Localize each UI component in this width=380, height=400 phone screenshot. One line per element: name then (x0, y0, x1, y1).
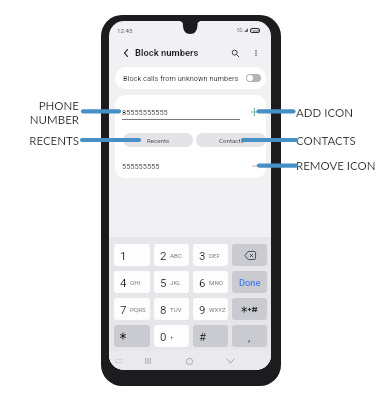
staticText: JKL (170, 279, 181, 286)
staticText: 555555555 (122, 162, 160, 171)
staticText: 6 (199, 276, 206, 289)
button[interactable]: Done (232, 271, 267, 293)
staticText: Block calls from unknown numbers (123, 74, 239, 83)
staticText: CONTACTS (296, 134, 356, 148)
staticText: 3 (199, 249, 206, 262)
staticText: 85555555555 (122, 108, 168, 117)
staticText: PHONE NUMBER (0, 99, 79, 126)
staticText: WXYZ (209, 306, 226, 313)
button[interactable]: 555555555 (115, 154, 266, 178)
staticText: 9 (199, 303, 206, 316)
button[interactable]: 2 (154, 244, 189, 266)
staticText: 5G (237, 28, 243, 33)
staticText: Contacts (219, 137, 244, 144)
staticText: 7 (120, 303, 127, 316)
button[interactable]: Hide keyboard (113, 355, 125, 367)
button[interactable]: 7 (114, 298, 150, 320)
button[interactable]: 9 (193, 298, 228, 320)
button[interactable]: Home (182, 354, 196, 368)
button[interactable]: Comma (232, 325, 267, 347)
staticText: 2 (160, 249, 167, 262)
staticText: # (199, 330, 207, 343)
button[interactable]: Back (223, 354, 237, 368)
button[interactable]: Star plus hash (232, 298, 267, 320)
staticText: Block numbers (135, 47, 199, 58)
staticText: DEF (209, 252, 220, 259)
button[interactable]: Star (114, 325, 150, 347)
button[interactable]: Remove number (249, 159, 263, 173)
button[interactable]: Add number (247, 105, 261, 119)
staticText: , (248, 330, 251, 343)
button[interactable]: 8 (154, 298, 189, 320)
button[interactable]: 3 (193, 244, 228, 266)
button[interactable]: Recent apps (141, 354, 155, 368)
staticText: 0 (160, 330, 167, 343)
button[interactable]: Backspace (232, 244, 267, 266)
button[interactable]: 4 (114, 271, 150, 293)
staticText: ADD ICON (296, 106, 353, 120)
button[interactable]: 1 (114, 244, 150, 266)
button[interactable]: 5 (154, 271, 189, 293)
button[interactable]: Block calls from unknown numbers (115, 67, 266, 89)
staticText: MNO (209, 279, 224, 286)
button[interactable]: # (193, 325, 228, 347)
staticText: 100 (252, 29, 259, 32)
staticText: REMOVE ICON (296, 159, 376, 173)
staticText: Done (239, 277, 261, 288)
button[interactable]: Contacts (196, 133, 266, 147)
button[interactable]: More options (249, 46, 262, 59)
button[interactable]: Recents (123, 133, 193, 147)
staticText: 12:45 (117, 27, 133, 34)
button[interactable]: Navigate up (119, 46, 132, 59)
staticText: GHI (130, 279, 141, 286)
staticText: + (170, 333, 174, 340)
staticText: PQRS (130, 306, 146, 313)
staticText: TUV (170, 306, 182, 313)
staticText: ABC (170, 252, 182, 259)
staticText: 4 (120, 276, 127, 289)
staticText: 5 (160, 276, 167, 289)
staticText: 8 (160, 303, 167, 316)
button[interactable]: 0 (154, 325, 189, 347)
staticText: RECENTS (0, 134, 79, 148)
button[interactable]: 6 (193, 271, 228, 293)
staticText: 1 (120, 249, 127, 262)
button[interactable]: Search (228, 46, 242, 60)
staticText: Recents (147, 137, 170, 144)
